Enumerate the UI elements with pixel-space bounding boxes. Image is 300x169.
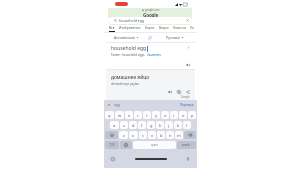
- staticText: Заменить: [147, 53, 162, 57]
- staticText: m: [177, 133, 181, 138]
- button[interactable]: Emoji: [120, 141, 132, 149]
- staticText: k: [177, 123, 180, 128]
- staticText: h: [159, 123, 162, 128]
- staticText: Google: [181, 95, 190, 99]
- staticText: Видео: [159, 26, 169, 30]
- button[interactable]: Изображения: [117, 25, 143, 30]
- other: Clear search: [186, 19, 189, 22]
- button[interactable]: Share: [186, 90, 190, 94]
- button[interactable]: u: [161, 111, 169, 119]
- staticText: i: [173, 113, 175, 118]
- staticText: o: [182, 113, 185, 118]
- staticText: y: [155, 113, 158, 118]
- staticText: household egg: [119, 18, 145, 23]
- button[interactable]: Listen to source: [186, 63, 190, 67]
- button[interactable]: q: [105, 111, 114, 119]
- staticText: v: [151, 133, 154, 138]
- staticText: Все: [109, 26, 115, 30]
- staticText: Также:: [111, 53, 122, 57]
- button[interactable]: x: [129, 131, 138, 139]
- staticText: r: [137, 113, 139, 118]
- button[interactable]: Русский: [154, 33, 195, 42]
- button[interactable]: a: [110, 121, 119, 129]
- staticText: domashneye yaytso: [111, 82, 140, 86]
- staticText: ?123: [109, 143, 115, 147]
- button[interactable]: h: [156, 121, 164, 129]
- staticText: z: [123, 133, 125, 138]
- staticText: домашнее яйцо: [111, 74, 150, 81]
- staticText: p: [191, 113, 194, 118]
- staticText: s: [123, 123, 125, 128]
- staticText: f: [141, 123, 143, 128]
- staticText: search: [182, 143, 191, 147]
- button[interactable]: i: [170, 111, 178, 119]
- button[interactable]: n: [166, 131, 174, 139]
- staticText: household eggs: [122, 53, 145, 57]
- button[interactable]: k: [174, 121, 182, 129]
- button[interactable]: g: [147, 121, 155, 129]
- staticText: c: [142, 133, 144, 138]
- button[interactable]: Clear text: [187, 46, 190, 49]
- button[interactable]: Keyboard settings: [111, 157, 115, 161]
- button[interactable]: ?123: [105, 141, 119, 149]
- button[interactable]: Видео: [157, 25, 171, 30]
- staticText: household egg: [111, 45, 147, 52]
- staticText: space: [151, 143, 159, 147]
- staticText: b: [160, 133, 163, 138]
- button[interactable]: j: [165, 121, 173, 129]
- button[interactable]: space: [133, 141, 176, 149]
- staticText: w: [118, 113, 122, 118]
- staticText: g: [150, 123, 153, 128]
- button[interactable]: Новости: [171, 25, 188, 30]
- button[interactable]: Voice input: [186, 157, 190, 161]
- staticText: j: [168, 123, 170, 128]
- button[interactable]: v: [148, 131, 156, 139]
- button[interactable]: l: [183, 121, 191, 129]
- button[interactable]: r: [134, 111, 142, 119]
- button[interactable]: w: [115, 111, 124, 119]
- staticText: x: [132, 133, 135, 138]
- button[interactable]: Все: [107, 25, 117, 32]
- staticText: Google: [143, 12, 159, 18]
- button[interactable]: s: [120, 121, 128, 129]
- staticText: google.com: [145, 8, 160, 12]
- button[interactable]: t: [143, 111, 151, 119]
- staticText: n: [169, 133, 172, 138]
- staticText: Английский: [114, 35, 135, 40]
- button[interactable]: Swap languages: [146, 34, 154, 42]
- button[interactable]: Copy: [177, 90, 181, 94]
- staticText: Карты: [145, 26, 155, 30]
- staticText: a: [113, 123, 116, 128]
- button[interactable]: p: [188, 111, 196, 119]
- staticText: Перевод: [180, 103, 194, 107]
- button[interactable]: Пок: [188, 25, 197, 30]
- button[interactable]: Английский: [106, 33, 146, 42]
- button[interactable]: household egg: [108, 17, 192, 24]
- staticText: Пок: [190, 26, 195, 30]
- button[interactable]: search: [177, 141, 196, 149]
- button[interactable]: Backspace: [184, 131, 196, 139]
- button[interactable]: Shift: [105, 131, 118, 139]
- button[interactable]: e: [125, 111, 133, 119]
- staticText: Новости: [173, 26, 186, 30]
- button[interactable]: y: [152, 111, 160, 119]
- button[interactable]: Карты: [143, 25, 157, 30]
- button[interactable]: More suggestions: [107, 103, 111, 107]
- button[interactable]: z: [119, 131, 128, 139]
- button[interactable]: d: [129, 121, 137, 129]
- staticText: q: [108, 113, 111, 118]
- button[interactable]: c: [139, 131, 147, 139]
- button[interactable]: Listen: [168, 90, 172, 94]
- staticText: Изображения: [119, 26, 141, 30]
- button[interactable]: Перевод: [180, 103, 194, 107]
- staticText: d: [132, 123, 135, 128]
- staticText: u: [164, 113, 167, 118]
- button[interactable]: m: [175, 131, 183, 139]
- staticText: l: [186, 123, 188, 128]
- button[interactable]: Заменить: [147, 53, 162, 57]
- button[interactable]: b: [157, 131, 165, 139]
- staticText: t: [146, 113, 148, 118]
- staticText: Русский: [166, 35, 180, 40]
- button[interactable]: f: [138, 121, 146, 129]
- button[interactable]: o: [179, 111, 187, 119]
